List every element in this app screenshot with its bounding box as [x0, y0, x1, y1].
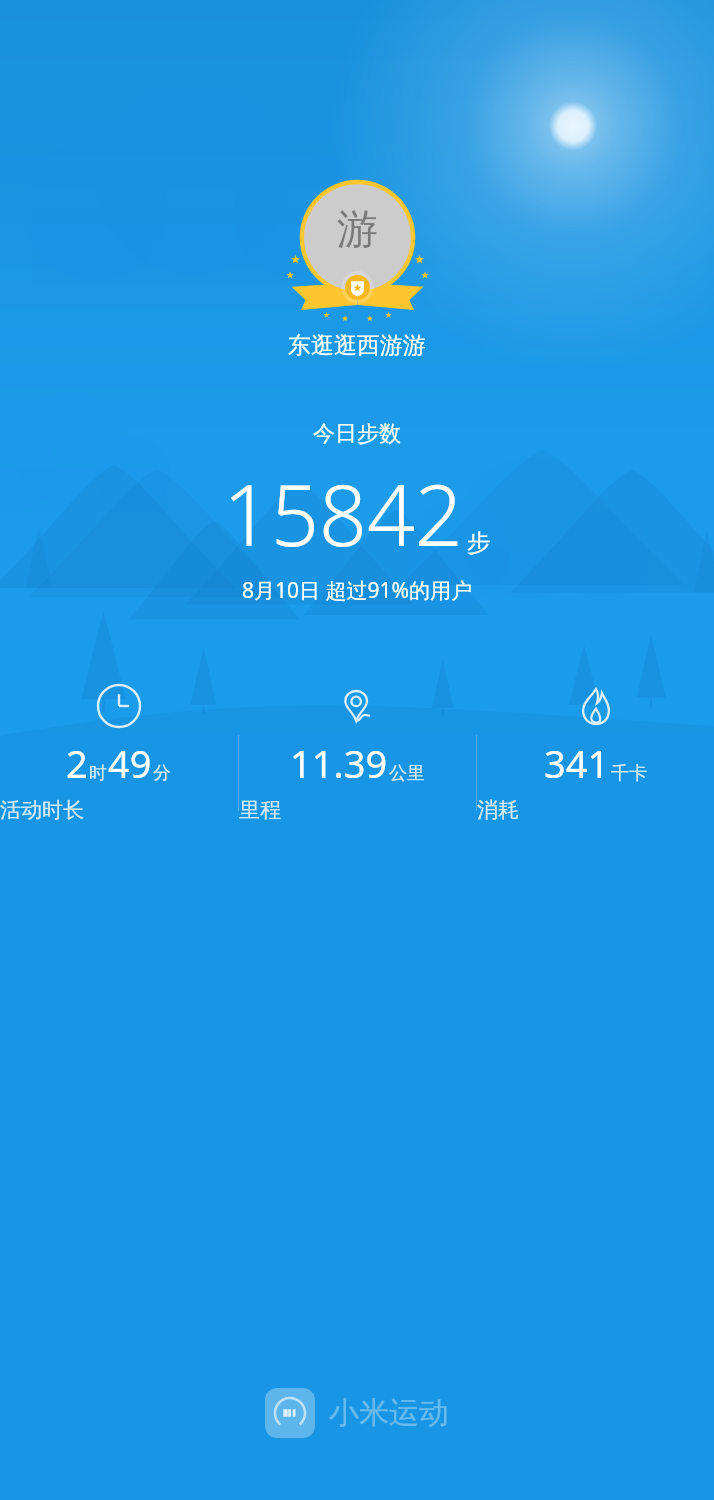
staticText: 千卡	[611, 762, 647, 785]
button[interactable]: 11.39	[239, 683, 476, 833]
staticText: 公里	[389, 762, 425, 785]
staticText: 时	[89, 762, 107, 785]
staticText: 2	[66, 737, 88, 789]
button[interactable]: 341	[477, 683, 714, 833]
staticText: 消耗	[477, 797, 714, 823]
staticText: 今日步数	[313, 420, 401, 448]
staticText: 游	[337, 204, 378, 256]
staticText: 活动时长	[0, 797, 238, 823]
staticText: 8月10日 超过91%的用户	[242, 576, 472, 605]
button[interactable]: 小米运动	[265, 1388, 449, 1438]
staticText: 步	[467, 528, 491, 558]
staticText: 49	[108, 737, 152, 789]
staticText: 小米运动	[329, 1394, 449, 1432]
staticText: 里程	[239, 797, 476, 823]
button[interactable]: 2	[0, 683, 238, 833]
staticText: 分	[153, 762, 171, 785]
button[interactable]: Achievement badge	[280, 183, 435, 325]
staticText: 341	[544, 737, 610, 789]
staticText: 15842	[223, 456, 463, 570]
staticText: 11.39	[290, 737, 388, 789]
staticText: 东逛逛西游游	[288, 331, 426, 360]
